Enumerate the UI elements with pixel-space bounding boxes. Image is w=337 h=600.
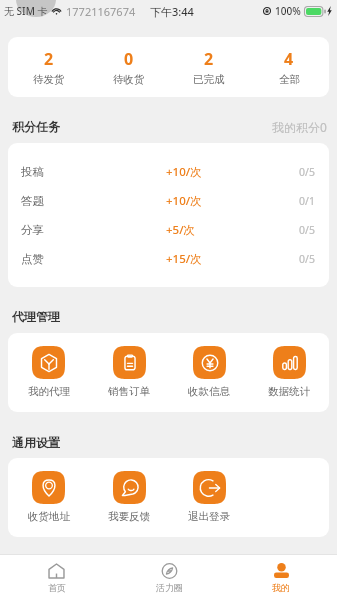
staticText: 已完成 <box>193 73 225 86</box>
button[interactable]: 2 <box>8 37 89 97</box>
button[interactable]: 退出登录 <box>169 458 249 537</box>
staticText: 0/5 <box>299 223 315 237</box>
staticText: 我的 <box>272 582 290 593</box>
staticText: 投稿 <box>21 165 44 179</box>
button[interactable]: 收款信息 <box>169 333 249 412</box>
button[interactable]: 我要反馈 <box>89 458 169 537</box>
button[interactable]: 投稿 <box>8 157 329 186</box>
button[interactable]: 4 <box>249 37 329 97</box>
staticText: 待收货 <box>113 73 145 86</box>
button[interactable]: 收货地址 <box>8 458 89 537</box>
staticText: 收款信息 <box>188 385 230 398</box>
staticText: 答题 <box>21 194 44 208</box>
staticText: 全部 <box>279 73 300 86</box>
staticText: 代理管理 <box>12 309 60 323</box>
staticText: 收货地址 <box>28 510 70 523</box>
staticText: 下午3:44 <box>150 4 194 19</box>
staticText: 0/1 <box>299 194 315 208</box>
staticText: 2 <box>44 48 54 70</box>
staticText: 退出登录 <box>188 510 230 523</box>
staticText: 积分任务 <box>12 119 60 133</box>
staticText: 通用设置 <box>12 435 60 449</box>
staticText: +15/次 <box>166 251 202 267</box>
button[interactable]: 活力圈 <box>113 555 225 600</box>
staticText: 活力圈 <box>156 582 183 593</box>
staticText: 我要反馈 <box>108 510 150 523</box>
staticText: 17721167674 <box>66 4 136 19</box>
staticText: 0 <box>124 48 134 70</box>
button[interactable]: 答题 <box>8 186 329 215</box>
staticText: 0/5 <box>299 165 315 179</box>
button[interactable]: 我的 <box>225 555 337 600</box>
staticText: 点赞 <box>21 252 44 266</box>
button[interactable]: 首页 <box>0 555 113 600</box>
staticText: +10/次 <box>166 193 202 209</box>
staticText: 数据统计 <box>268 385 310 398</box>
button[interactable]: 我的代理 <box>8 333 89 412</box>
staticText: 分享 <box>21 223 44 237</box>
staticText: 100% <box>275 4 301 18</box>
button[interactable]: 分享 <box>8 215 329 244</box>
button[interactable]: 点赞 <box>8 244 329 273</box>
staticText: 0/5 <box>299 252 315 266</box>
staticText: 2 <box>204 48 214 70</box>
staticText: +10/次 <box>166 164 202 180</box>
staticText: +5/次 <box>166 222 196 238</box>
staticText: 销售订单 <box>108 385 150 398</box>
staticText: 我的积分0 <box>272 119 327 133</box>
staticText: 我的代理 <box>28 385 70 398</box>
button[interactable]: 销售订单 <box>89 333 169 412</box>
button[interactable]: 0 <box>89 37 169 97</box>
button[interactable]: 数据统计 <box>249 333 329 412</box>
button[interactable]: 2 <box>169 37 249 97</box>
staticText: 首页 <box>48 582 66 593</box>
staticText: 4 <box>284 48 294 70</box>
staticText: 待发货 <box>33 73 65 86</box>
staticText: 无 SIM 卡 <box>4 4 48 18</box>
